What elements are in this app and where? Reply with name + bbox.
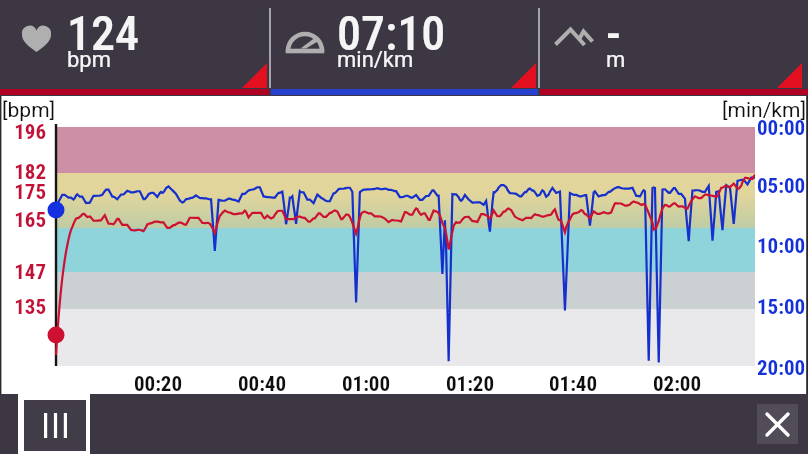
staticText: 196 [0,120,46,145]
staticText: [bpm] [2,98,56,123]
staticText: - [606,5,621,61]
staticText: 147 [0,260,46,285]
staticText: 10:00 [757,234,806,259]
staticText: 135 [0,295,46,320]
button[interactable]: - [540,0,808,88]
staticText: 02:00 [637,372,717,397]
staticText: 01:00 [326,372,406,397]
button[interactable]: 07:10 [271,0,538,88]
staticText: 20:00 [757,356,806,381]
staticText: 05:00 [757,174,806,199]
staticText: 00:40 [222,372,302,397]
staticText: m [606,47,626,73]
staticText: 00:20 [118,372,198,397]
staticText: 175 [0,180,46,205]
staticText: 124 [67,5,139,61]
staticText: 07:10 [337,5,446,61]
button[interactable]: 124 [0,0,269,88]
staticText: 01:40 [533,372,613,397]
staticText: 165 [0,208,46,233]
staticText: min/km [337,47,414,73]
staticText: 182 [0,160,46,185]
staticText: 01:20 [430,372,510,397]
staticText: 15:00 [757,295,806,320]
staticText: 00:00 [757,116,806,141]
staticText: [min/km] [690,98,806,123]
staticText: bpm [67,47,111,73]
button[interactable]: Close [757,404,798,444]
button[interactable]: Laps [18,394,90,454]
